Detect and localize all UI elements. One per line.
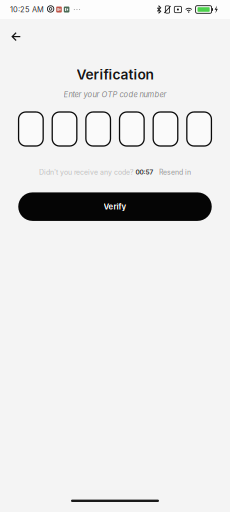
staticText: Verification [76,66,153,83]
button[interactable]: OTP digit 5 [153,112,178,146]
staticText: 10:25 AM [10,5,44,14]
button[interactable]: OTP digit 6 [187,112,211,146]
button[interactable]: Back [0,19,32,48]
button[interactable]: OTP digit 4 [119,112,144,146]
button[interactable]: OTP digit 3 [86,112,110,146]
button[interactable]: OTP digit 1 [19,112,43,146]
staticText: Didn't you receive any code? [39,168,134,176]
staticText: Verify [103,202,126,211]
button[interactable]: OTP digit 2 [52,112,77,146]
staticText: Enter your OTP code number [63,90,166,99]
staticText: Resend in [159,168,191,176]
button[interactable]: Verify [18,192,212,221]
staticText: 00:57 [136,168,154,176]
button[interactable]: Resend in [159,168,191,176]
